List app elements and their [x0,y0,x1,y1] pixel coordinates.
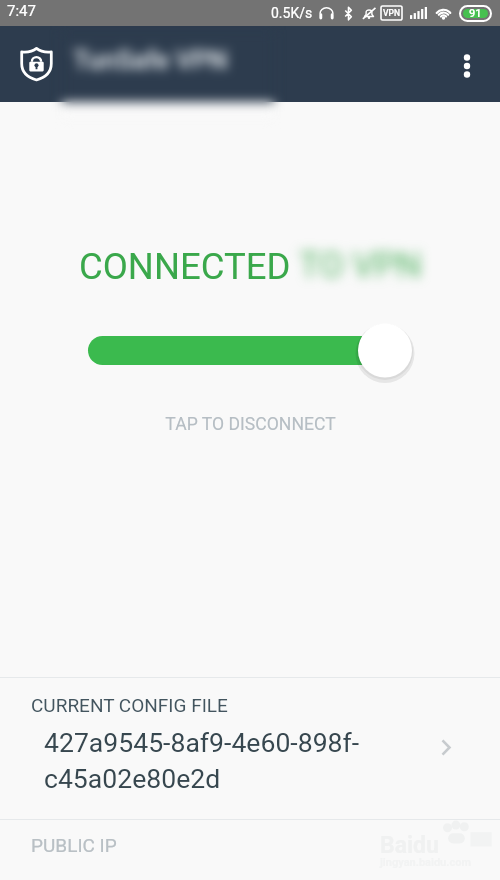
staticText: TAP TO DISCONNECT [165,414,336,435]
staticText: TunSafe VPN [73,45,228,75]
button[interactable]: VPN shield [16,43,56,83]
staticText: VPN [383,8,400,18]
button[interactable]: PUBLIC IP [0,820,500,880]
button[interactable]: Disconnect VPN [80,310,420,390]
staticText: CURRENT CONFIG FILE [31,694,228,716]
button[interactable]: TAP TO DISCONNECT [0,404,500,436]
staticText: 427a9545-8af9-4e60-898f-c45a02e80e2d [44,727,374,795]
staticText: 91 [469,7,482,20]
staticText: PUBLIC IP [31,834,117,856]
staticText: CONNECTED [79,245,291,288]
staticText: 7:47 [7,2,36,20]
staticText: Baidu [380,832,439,859]
button[interactable]: CURRENT CONFIG FILE [0,678,500,819]
button[interactable]: More options [444,44,489,89]
staticText: 0.5K/s [271,5,313,21]
staticText: TO VPN [291,245,422,286]
